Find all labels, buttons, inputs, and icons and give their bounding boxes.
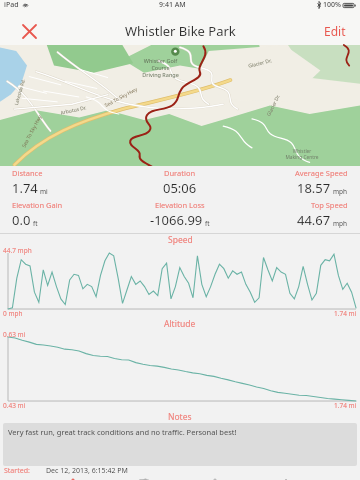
button[interactable]: Elevation Gain [0, 200, 120, 229]
staticText: mi [40, 187, 48, 196]
staticText: iPad [4, 0, 19, 10]
staticText: Arbutus Dr. [60, 104, 87, 117]
staticText: 05:06 [163, 179, 197, 197]
staticText: 44.67 [297, 211, 331, 229]
staticText: -1066.99 [150, 211, 203, 229]
staticText: Whistler Making Centre [285, 148, 319, 160]
staticText: Sea To Sky Hwy [20, 114, 44, 149]
staticText: Average Speed [295, 168, 348, 178]
staticText: Dec 12, 2013, 6:15:42 PM [46, 466, 128, 475]
staticText: ft [205, 219, 210, 228]
staticText: Whistler Golf Course Driving Range [142, 57, 179, 78]
staticText: mph [333, 219, 348, 228]
staticText: Started: [4, 466, 30, 475]
staticText: Notes [168, 411, 192, 423]
staticText: Glacier Dr. [247, 57, 272, 70]
staticText: Whistler Bike Park [125, 22, 236, 40]
staticText: Elevation Gain [12, 200, 63, 210]
button[interactable]: Distance [0, 168, 120, 197]
staticText: 1.74 [12, 179, 38, 197]
button[interactable]: Edit [320, 18, 350, 44]
staticText: 1.74 mi [334, 309, 357, 318]
button[interactable]: Duration [120, 168, 240, 197]
staticText: Lakeside Rd. [13, 78, 26, 106]
staticText: Top Speed [311, 200, 348, 210]
staticText: 0 mph [3, 309, 23, 318]
button[interactable]: Close [16, 18, 42, 44]
staticText: mph [333, 187, 348, 196]
button[interactable]: Elevation Loss [120, 200, 240, 229]
staticText: Distance [12, 168, 43, 178]
staticText: Altitude [164, 318, 196, 330]
staticText: Very fast run, great track conditions an… [8, 427, 237, 437]
staticText: 9:41 AM [159, 0, 186, 10]
staticText: Speed [168, 234, 193, 246]
button[interactable]: Top Speed [240, 200, 360, 229]
staticText: Duration [164, 168, 196, 178]
staticText: 0.0 [12, 211, 31, 229]
staticText: Elevation Loss [155, 200, 205, 210]
staticText: 1.74 mi [334, 401, 357, 410]
staticText: 44.7 mph [3, 246, 32, 255]
staticText: Glacier Dr. [265, 94, 282, 117]
button[interactable]: Very fast run, great track conditions an… [3, 423, 357, 466]
staticText: 100% [323, 0, 341, 10]
staticText: Edit [324, 23, 346, 39]
staticText: 18.57 [297, 179, 331, 197]
staticText: 0.63 mi [3, 330, 26, 339]
staticText: 0.43 mi [3, 401, 26, 410]
staticText: Sea To Sky Hwy [103, 86, 139, 109]
staticText: ft [33, 219, 38, 228]
button[interactable]: Average Speed [240, 168, 360, 197]
